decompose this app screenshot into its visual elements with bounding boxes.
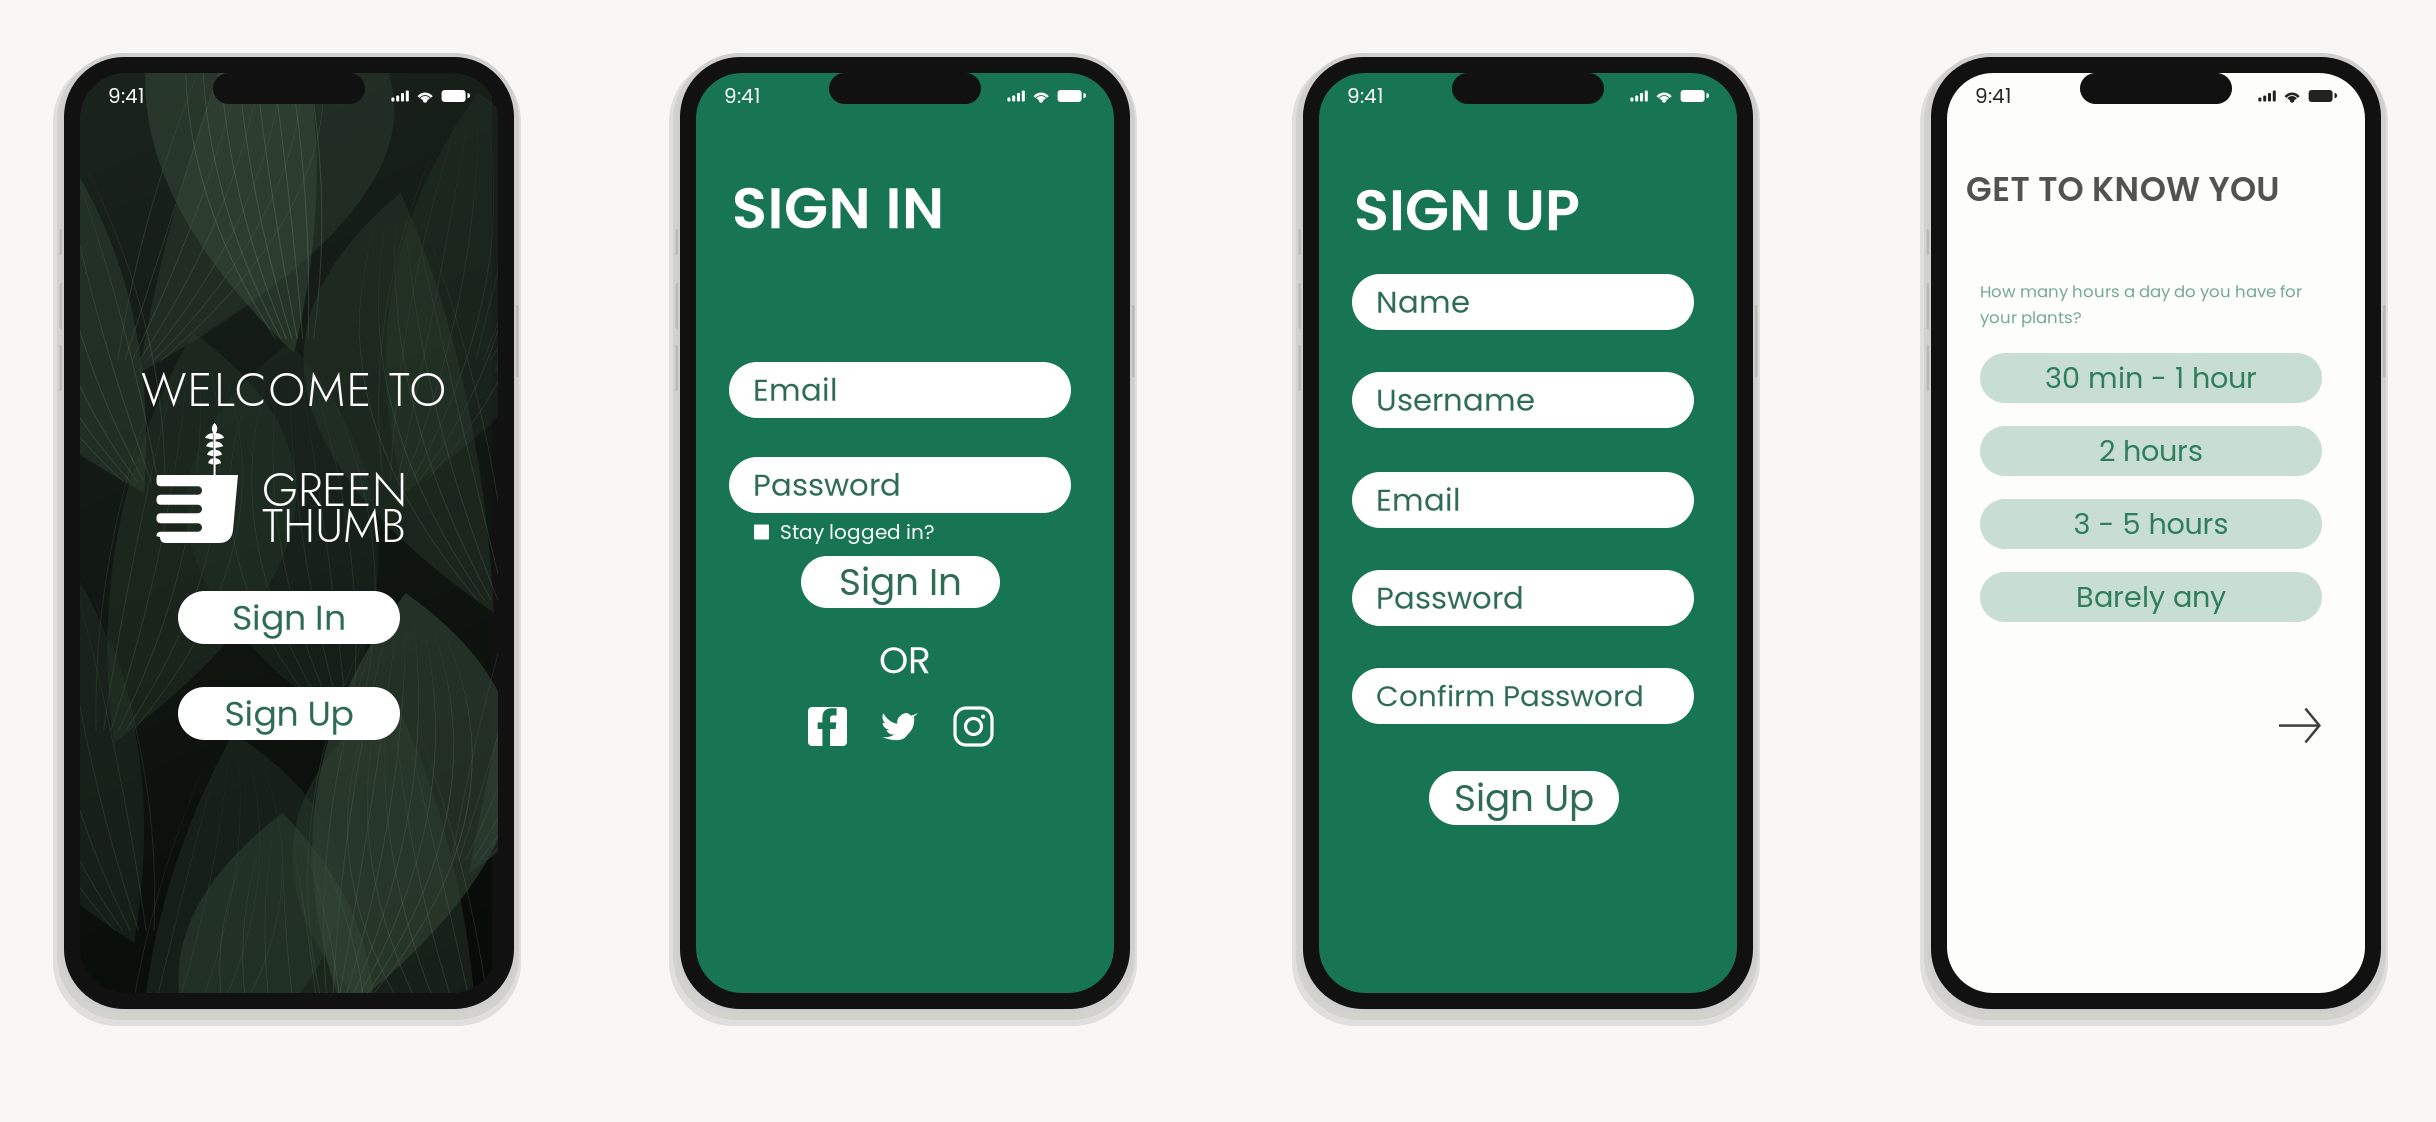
staticText: SIGN UP [1354, 170, 1580, 250]
staticText: Email [753, 368, 838, 411]
button[interactable]: 3 - 5 hours [1980, 499, 2322, 549]
staticText: How many hours a day do you have for [1980, 280, 2302, 303]
button[interactable]: 30 min - 1 hour [1980, 353, 2322, 403]
button[interactable]: Sign in with Facebook [808, 707, 847, 746]
button[interactable]: Sign In [178, 591, 400, 644]
staticText: GREEN [262, 456, 407, 523]
button[interactable]: Sign Up [1429, 771, 1619, 825]
staticText: 3 - 5 hours [2073, 504, 2228, 544]
staticText: Stay logged in? [780, 518, 934, 546]
button[interactable]: 2 hours [1980, 426, 2322, 476]
button[interactable]: Sign in with Instagram [954, 707, 993, 746]
staticText: 9:41 [108, 82, 144, 110]
staticText: 9:41 [1347, 82, 1383, 110]
staticText: Username [1376, 378, 1535, 421]
button[interactable]: Barely any [1980, 572, 2322, 622]
staticText: Email [1376, 478, 1461, 521]
staticText: Password [1376, 576, 1524, 619]
staticText: Name [1376, 280, 1470, 323]
staticText: OR [879, 634, 931, 686]
staticText: Barely any [2076, 577, 2226, 617]
button[interactable]: Next [2278, 707, 2322, 745]
staticText: GET TO KNOW YOU [1966, 166, 2279, 213]
button[interactable]: Stay logged in? [750, 514, 938, 550]
staticText: Sign Up [224, 689, 353, 738]
staticText: Sign In [839, 556, 962, 608]
staticText: 9:41 [724, 82, 760, 110]
staticText: Sign Up [1454, 772, 1594, 824]
button[interactable]: Sign in with Twitter [881, 709, 918, 740]
staticText: Confirm Password [1376, 675, 1644, 717]
staticText: Sign In [232, 593, 346, 642]
button[interactable]: Sign In [801, 556, 1000, 608]
staticText: WELCOME TO [141, 356, 446, 423]
staticText: your plants? [1980, 306, 2082, 329]
staticText: Password [753, 463, 901, 506]
staticText: 30 min - 1 hour [2045, 358, 2257, 398]
staticText: SIGN IN [732, 168, 944, 248]
button[interactable]: Sign Up [178, 687, 400, 740]
staticText: THUMB [262, 492, 406, 559]
staticText: 9:41 [1975, 82, 2011, 110]
staticText: 2 hours [2099, 431, 2203, 471]
